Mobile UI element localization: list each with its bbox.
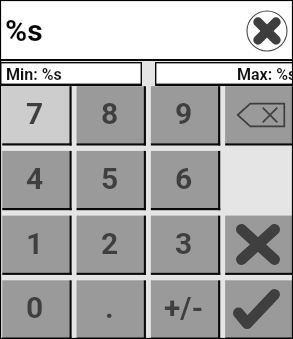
- staticText: 6: [175, 161, 193, 196]
- staticText: 0: [26, 290, 44, 325]
- staticText: Max: %s: [237, 65, 293, 84]
- staticText: 1: [26, 226, 44, 261]
- staticText: 7: [26, 96, 44, 131]
- other: Cancel: [236, 224, 280, 265]
- staticText: Min: %s: [6, 65, 62, 84]
- button[interactable]: Max: %s: [155, 62, 293, 86]
- button[interactable]: 5: [77, 151, 144, 208]
- button[interactable]: 3: [151, 216, 218, 273]
- staticText: 5: [101, 161, 119, 196]
- staticText: 9: [175, 96, 193, 131]
- staticText: %s: [5, 13, 43, 48]
- button[interactable]: 6: [151, 151, 218, 208]
- staticText: 4: [26, 161, 44, 196]
- button[interactable]: 4: [2, 151, 69, 208]
- other: Confirm: [233, 289, 280, 329]
- button[interactable]: 0: [2, 280, 69, 337]
- staticText: 2: [101, 226, 119, 261]
- other: Backspace: [236, 102, 286, 128]
- button[interactable]: Confirm: [225, 280, 292, 337]
- staticText: +/-: [164, 290, 204, 325]
- button[interactable]: 1: [2, 216, 69, 273]
- button[interactable]: +/-: [151, 280, 218, 337]
- button[interactable]: 8: [77, 86, 144, 143]
- staticText: .: [105, 290, 114, 325]
- button[interactable]: 7: [2, 86, 69, 143]
- staticText: 3: [175, 226, 193, 261]
- button[interactable]: 2: [77, 216, 144, 273]
- button[interactable]: Cancel: [225, 216, 292, 273]
- button[interactable]: 9: [151, 86, 218, 143]
- staticText: 8: [101, 96, 119, 131]
- button[interactable]: Backspace: [225, 86, 292, 143]
- button[interactable]: Min: %s: [0, 62, 142, 86]
- button[interactable]: Close: [244, 8, 290, 54]
- button[interactable]: .: [77, 280, 144, 337]
